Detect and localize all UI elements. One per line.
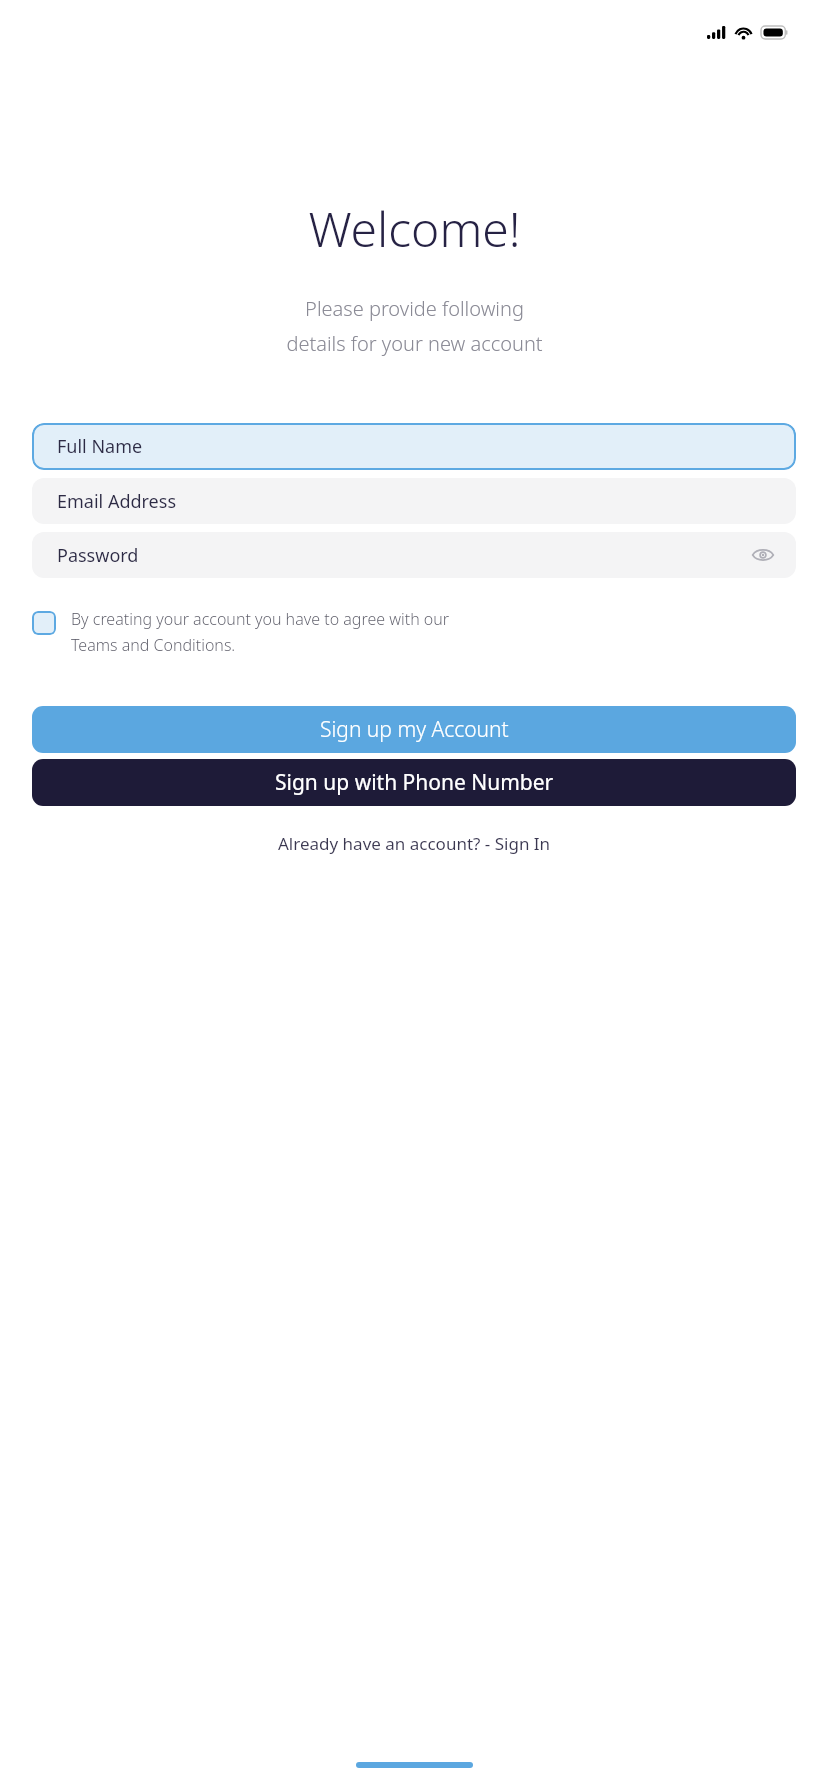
staticText: Full Name [57,434,143,459]
button[interactable]: Email Address [32,478,796,524]
staticText: Sign up my Account [320,715,509,744]
staticText: details for your new account [286,330,543,357]
staticText: Already have an account? - Sign In [278,832,551,855]
staticText: By creating your account you have to agr… [71,608,450,630]
staticText: Email Address [57,489,177,514]
staticText: Teams and Conditions. [71,634,236,656]
staticText: Please provide following [305,295,524,322]
staticText: Sign up with Phone Number [275,768,554,797]
staticText: Welcome! [308,196,521,261]
button[interactable]: Sign up with Phone Number [32,759,796,806]
button[interactable]: Full Name [32,423,796,470]
button[interactable]: Password [32,532,796,578]
button[interactable]: Sign up my Account [32,706,796,753]
staticText: Password [57,543,139,568]
button[interactable]: Already have an account? - Sign In [268,828,561,859]
button[interactable]: By creating your account you have to agr… [32,608,796,656]
button[interactable]: Show password [746,538,780,572]
